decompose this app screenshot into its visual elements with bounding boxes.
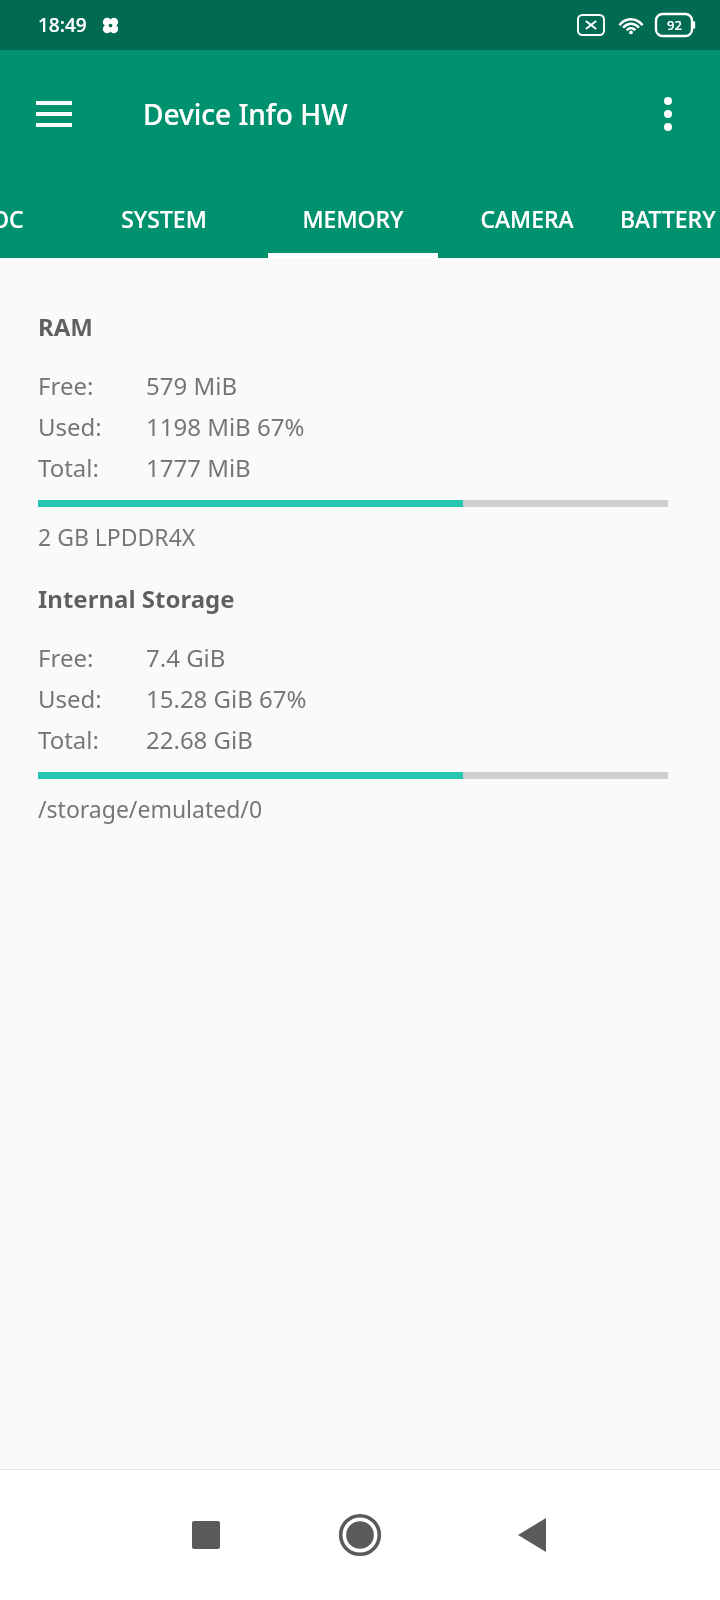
- staticText: SYSTEM: [121, 203, 207, 234]
- staticText: 15.28 GiB 67%: [146, 682, 307, 715]
- staticText: 1777 MiB: [146, 451, 251, 484]
- staticText: BATTERY: [620, 203, 716, 234]
- button[interactable]: Open navigation menu: [18, 78, 90, 150]
- staticText: SOC: [0, 203, 24, 234]
- staticText: Total:: [38, 451, 146, 484]
- button[interactable]: Back: [496, 1499, 568, 1571]
- staticText: 92: [667, 16, 682, 34]
- button[interactable]: Recent apps: [170, 1499, 242, 1571]
- staticText: Device Info HW: [143, 95, 348, 133]
- button[interactable]: SYSTEM: [60, 178, 268, 258]
- staticText: 2 GB LPDDR4X: [38, 521, 196, 552]
- staticText: Used:: [38, 410, 146, 443]
- staticText: Internal Storage: [38, 582, 235, 615]
- button[interactable]: CAMERA: [437, 178, 617, 258]
- staticText: 1198 MiB 67%: [146, 410, 305, 443]
- staticText: RAM: [38, 310, 93, 343]
- staticText: Total:: [38, 723, 146, 756]
- button[interactable]: SOC: [0, 178, 60, 258]
- staticText: /storage/emulated/0: [38, 793, 263, 824]
- staticText: MEMORY: [302, 203, 404, 234]
- button[interactable]: BATTERY: [620, 178, 720, 258]
- staticText: 22.68 GiB: [146, 723, 253, 756]
- staticText: 7.4 GiB: [146, 641, 226, 674]
- staticText: Free:: [38, 641, 146, 674]
- button[interactable]: Home: [322, 1497, 398, 1573]
- staticText: Free:: [38, 369, 146, 402]
- staticText: CAMERA: [480, 203, 574, 234]
- staticText: 18:49: [38, 12, 87, 38]
- button[interactable]: More options: [632, 78, 704, 150]
- staticText: Used:: [38, 682, 146, 715]
- staticText: 579 MiB: [146, 369, 237, 402]
- button[interactable]: MEMORY: [268, 178, 438, 258]
